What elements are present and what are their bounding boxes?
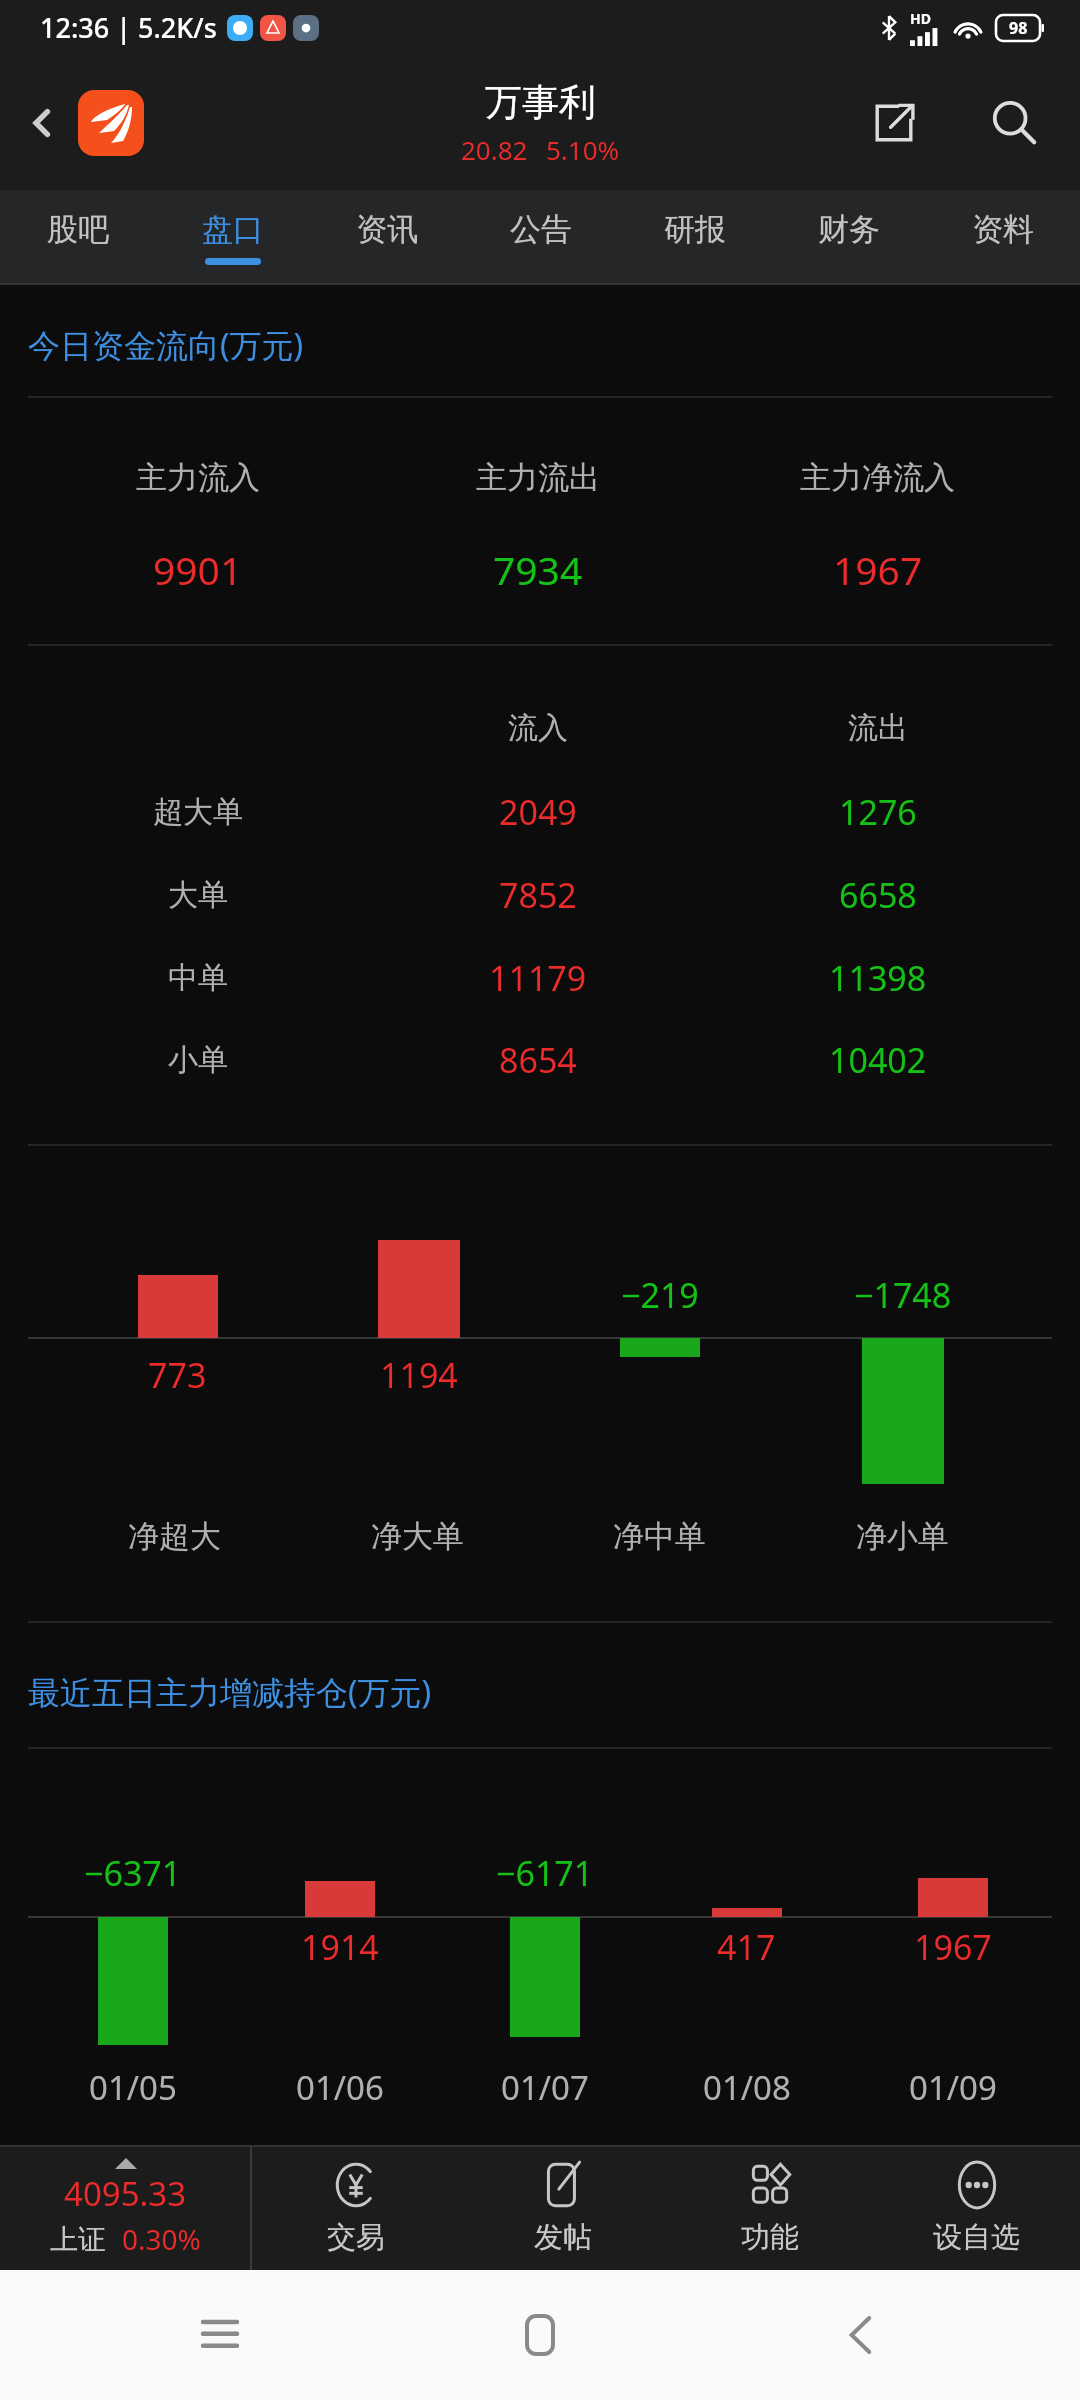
staticText: 5.10% [546, 132, 620, 167]
staticText: 资讯 [356, 210, 418, 249]
staticText: 7852 [499, 872, 577, 918]
staticText: 中单 [168, 959, 228, 997]
staticText: 01/05 [89, 2065, 177, 2110]
button[interactable]: 功能 [666, 2145, 873, 2270]
button[interactable]: Home [500, 2295, 580, 2375]
staticText: 净小单 [856, 1517, 949, 1556]
staticText: 1967 [914, 1924, 992, 1970]
staticText: 主力净流入 [800, 458, 955, 497]
button[interactable]: 研报 [618, 190, 772, 285]
staticText: 01/06 [296, 2065, 384, 2110]
staticText: 资料 [972, 210, 1034, 249]
staticText: 1967 [833, 543, 923, 596]
button[interactable]: Share [858, 87, 930, 159]
staticText: 0.30% [122, 2220, 201, 2258]
staticText: 超大单 [153, 793, 243, 831]
staticText: 主力流出 [476, 458, 600, 497]
staticText: 净中单 [613, 1517, 706, 1556]
staticText: 6658 [839, 872, 917, 918]
staticText: 01/08 [703, 2065, 791, 2110]
staticText: 发帖 [534, 2219, 592, 2256]
staticText: 10402 [829, 1037, 927, 1083]
staticText: 设自选 [933, 2219, 1020, 2256]
staticText: 股吧 [47, 210, 109, 249]
button[interactable]: Back [12, 93, 72, 153]
staticText: 公告 [510, 210, 572, 249]
staticText: −219 [621, 1272, 699, 1318]
staticText: 流入 [508, 709, 568, 747]
button[interactable]: 发帖 [459, 2145, 666, 2270]
staticText: 净大单 [371, 1517, 464, 1556]
button[interactable]: 资料 [926, 190, 1080, 285]
staticText: 万事利 [485, 79, 596, 126]
staticText: 主力流入 [136, 458, 260, 497]
button[interactable]: Back [820, 2295, 900, 2375]
staticText: 盘口 [202, 210, 264, 249]
staticText: 4095.33 [64, 2171, 187, 2216]
staticText: 12:36 | 5.2K/s [40, 9, 217, 46]
button[interactable]: 公告 [464, 190, 618, 285]
staticText: 1194 [380, 1352, 458, 1398]
button[interactable]: 资讯 [310, 190, 464, 285]
staticText: 研报 [664, 210, 726, 249]
staticText: −6171 [496, 1850, 594, 1896]
staticText: 773 [148, 1352, 207, 1398]
staticText: 财务 [818, 210, 880, 249]
button[interactable]: Recents [180, 2295, 260, 2375]
staticText: 今日资金流向(万元) [28, 323, 304, 367]
staticText: 7934 [493, 543, 583, 596]
staticText: 8654 [499, 1037, 577, 1083]
button[interactable]: Search [978, 87, 1050, 159]
staticText: 净超大 [128, 1517, 221, 1556]
staticText: 上证 [50, 2222, 106, 2257]
button[interactable]: 财务 [772, 190, 926, 285]
staticText: 1914 [301, 1924, 379, 1970]
staticText: 01/07 [501, 2065, 589, 2110]
staticText: −1748 [854, 1272, 952, 1318]
button[interactable]: 4095.33 [0, 2145, 250, 2270]
button[interactable]: 设自选 [873, 2145, 1080, 2270]
staticText: 01/09 [909, 2065, 997, 2110]
staticText: 11179 [489, 955, 587, 1001]
staticText: 9901 [153, 543, 243, 596]
staticText: −6371 [84, 1850, 182, 1896]
staticText: 417 [717, 1924, 776, 1970]
button[interactable]: 盘口 [155, 190, 310, 285]
button[interactable]: App logo [78, 90, 144, 156]
staticText: 功能 [741, 2219, 799, 2256]
staticText: 98 [1009, 17, 1028, 39]
button[interactable]: 股吧 [0, 190, 155, 285]
staticText: 1276 [839, 789, 917, 835]
staticText: HD [910, 9, 931, 28]
staticText: 20.82 [461, 132, 528, 167]
staticText: 大单 [168, 876, 228, 914]
staticText: 最近五日主力增减持仓(万元) [28, 1670, 432, 1714]
staticText: 小单 [168, 1041, 228, 1079]
staticText: 11398 [829, 955, 927, 1001]
staticText: 流出 [848, 709, 908, 747]
staticText: 2049 [499, 789, 577, 835]
button[interactable]: 交易 [252, 2145, 459, 2270]
staticText: 交易 [327, 2219, 385, 2256]
